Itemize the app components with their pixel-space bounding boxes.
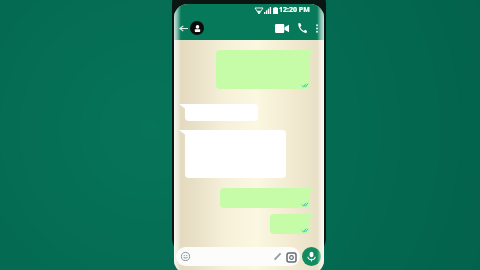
button[interactable]: Voice call xyxy=(294,20,309,36)
other: Camera xyxy=(287,253,296,262)
button[interactable] xyxy=(216,50,313,89)
button[interactable]: Contact profile xyxy=(190,21,204,35)
other: Emoji xyxy=(181,252,190,261)
button[interactable]: Back xyxy=(175,20,191,36)
button[interactable] xyxy=(220,188,313,208)
button[interactable]: Video call xyxy=(273,20,290,36)
staticText: 12:20 PM xyxy=(279,5,310,15)
button[interactable] xyxy=(270,214,313,234)
other: Attach xyxy=(273,252,282,261)
button[interactable]: Emoji xyxy=(176,247,300,266)
button[interactable]: Record voice message xyxy=(302,247,321,266)
button[interactable]: More options xyxy=(311,20,323,36)
button[interactable] xyxy=(179,130,286,178)
button[interactable] xyxy=(179,104,258,121)
